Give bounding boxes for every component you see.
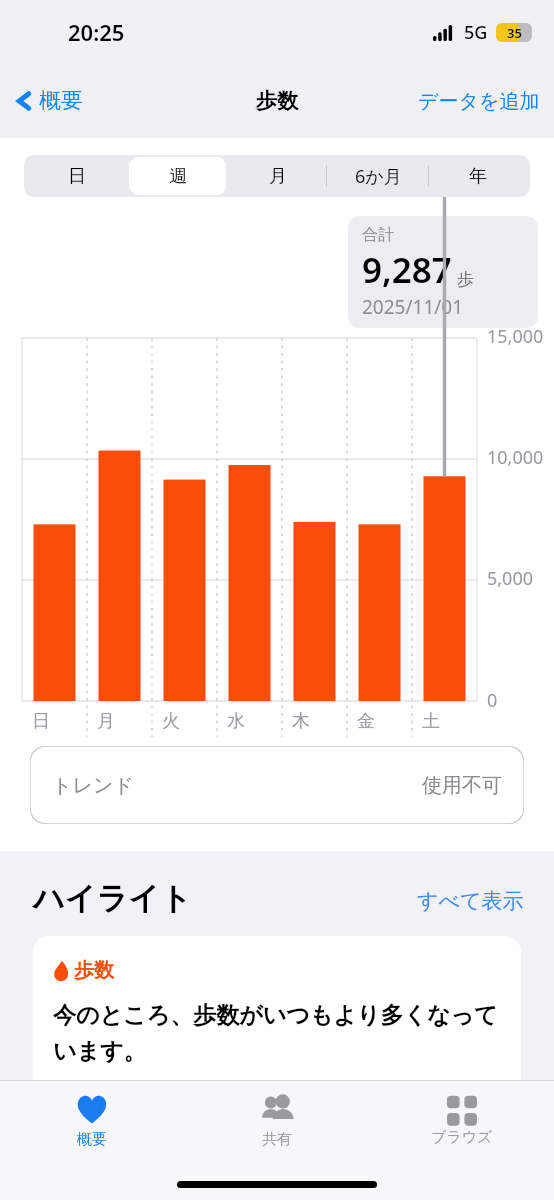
staticText: 月: [269, 165, 287, 188]
staticText: 20:25: [68, 17, 125, 47]
button[interactable]: Summary: [0, 1090, 184, 1153]
staticText: 日: [32, 710, 50, 733]
staticText: 35: [507, 24, 522, 42]
staticText: 歩: [457, 269, 474, 290]
staticText: ブラウズ: [431, 1128, 493, 1147]
staticText: 6か月: [355, 164, 402, 189]
staticText: 火: [162, 710, 180, 733]
staticText: 共有: [262, 1130, 292, 1149]
staticText: 使用不可: [422, 773, 502, 798]
staticText: 木: [292, 710, 310, 733]
button[interactable]: トレンド: [30, 746, 524, 824]
staticText: 日: [68, 165, 86, 188]
button[interactable]: Browse: [369, 1090, 554, 1151]
button[interactable]: 年: [430, 157, 526, 195]
staticText: 0: [487, 688, 498, 713]
other: Browse: [447, 1094, 477, 1122]
button[interactable]: 週: [129, 157, 226, 195]
staticText: 歩数: [256, 88, 298, 114]
staticText: 9,287: [362, 246, 452, 294]
staticText: 土: [422, 710, 440, 733]
staticText: 週: [169, 165, 187, 188]
staticText: 金: [357, 710, 375, 733]
staticText: 月: [97, 710, 115, 733]
button[interactable]: 6か月: [330, 157, 426, 195]
staticText: 概要: [39, 87, 83, 115]
staticText: 5,000: [487, 566, 534, 591]
staticText: 概要: [77, 1130, 107, 1149]
button[interactable]: 日: [28, 157, 125, 195]
staticText: 2025/11/01: [362, 294, 464, 320]
button[interactable]: データを追加: [410, 89, 554, 114]
staticText: 今のところ、歩数がいつもより多くなって います。: [53, 1001, 498, 1066]
staticText: 5G: [464, 20, 488, 45]
staticText: 合計: [362, 225, 394, 245]
other: Summary: [75, 1094, 109, 1124]
button[interactable]: Steps: [33, 936, 521, 1080]
button[interactable]: すべて表示: [413, 884, 528, 918]
staticText: トレンド: [52, 773, 134, 798]
other: Steps: [53, 960, 70, 982]
other: Sharing: [255, 1094, 299, 1124]
staticText: 水: [227, 710, 245, 733]
staticText: 10,000: [487, 445, 544, 470]
button[interactable]: 概要: [10, 81, 87, 121]
staticText: 歩数: [74, 958, 114, 983]
staticText: 15,000: [487, 324, 544, 349]
button[interactable]: Sharing: [184, 1090, 369, 1153]
staticText: ハイライト: [33, 879, 192, 918]
staticText: 年: [469, 165, 487, 188]
button[interactable]: 月: [230, 157, 326, 195]
